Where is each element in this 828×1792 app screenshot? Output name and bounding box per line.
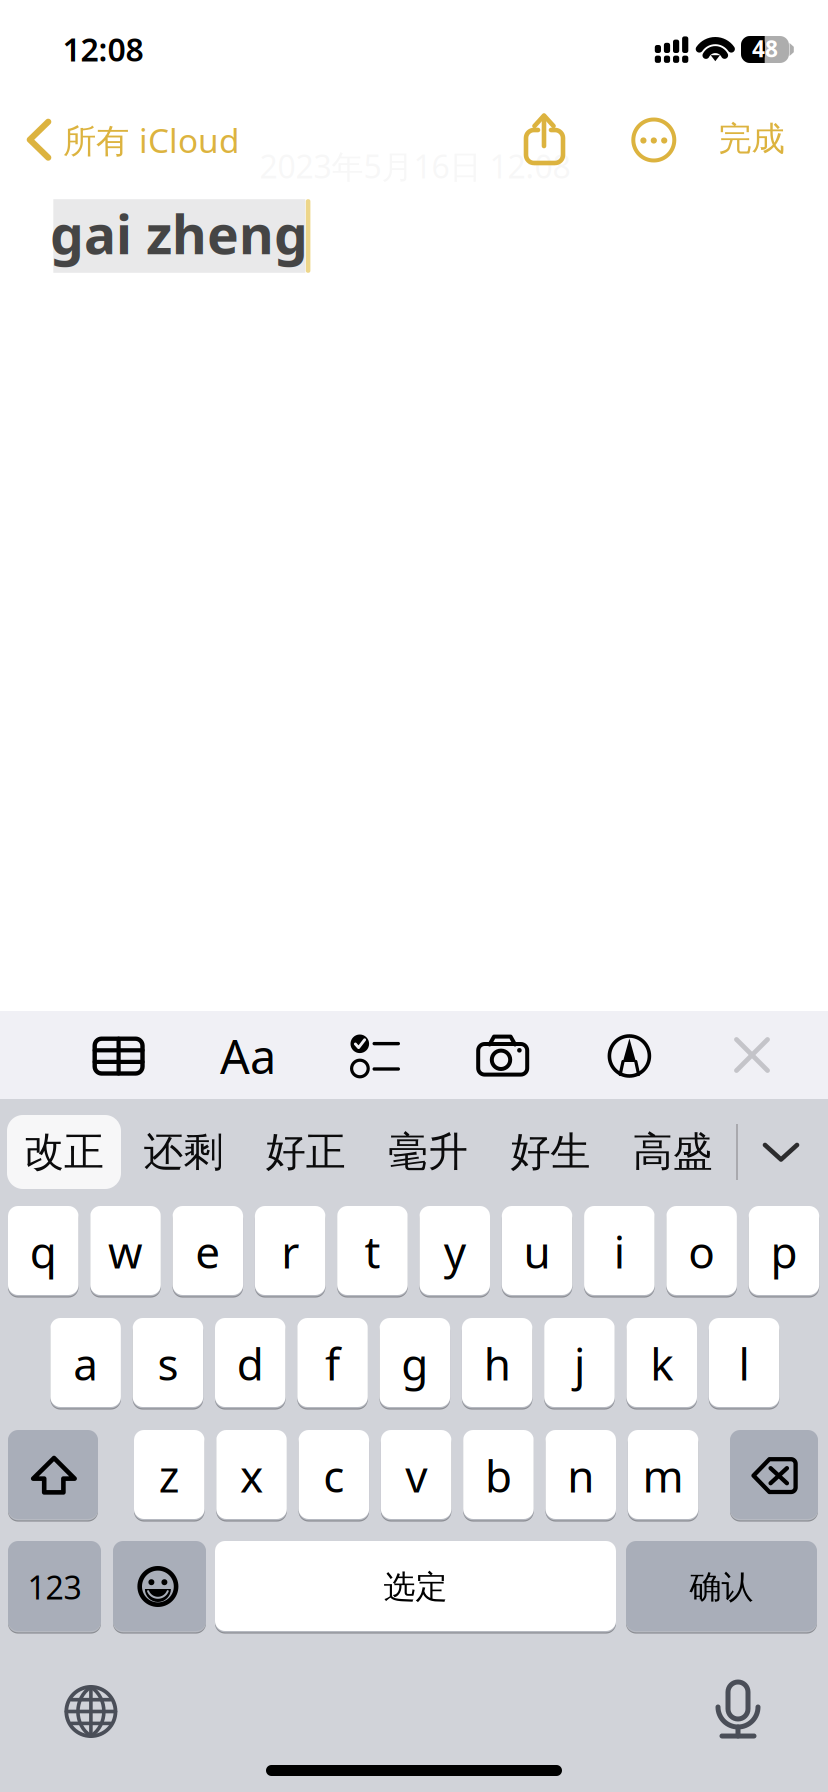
button[interactable]: q — [0, 0, 828, 1792]
staticText: f — [325, 1334, 340, 1393]
button[interactable]: w — [0, 0, 828, 1792]
button[interactable]: j — [0, 0, 828, 1792]
staticText: a — [73, 1334, 98, 1393]
staticText: d — [237, 1334, 264, 1393]
staticText: 123 — [27, 1566, 81, 1608]
staticText: 选定 — [383, 1567, 447, 1607]
button[interactable]: 完成 — [0, 0, 828, 1792]
staticText: 48 — [752, 33, 778, 63]
button[interactable]: a — [0, 0, 828, 1792]
staticText: y — [444, 1222, 466, 1281]
button[interactable]: Checklist — [0, 0, 828, 1792]
staticText: s — [157, 1334, 178, 1393]
staticText: t — [364, 1222, 380, 1281]
staticText: 确认 — [689, 1567, 753, 1607]
staticText: j — [574, 1334, 585, 1393]
button[interactable]: Table — [0, 0, 828, 1792]
staticText: 改正 — [24, 1127, 104, 1176]
staticText: gai zheng — [50, 198, 308, 269]
button[interactable]: h — [0, 0, 828, 1792]
button[interactable]: k — [0, 0, 828, 1792]
staticText: i — [614, 1222, 625, 1281]
button[interactable]: More options — [0, 0, 828, 1792]
button[interactable]: Switch keyboard — [0, 0, 828, 1792]
button[interactable]: p — [0, 0, 828, 1792]
staticText: Aa — [220, 1025, 276, 1087]
staticText: 毫升 — [388, 1127, 468, 1176]
staticText: p — [770, 1222, 797, 1281]
staticText: r — [281, 1222, 299, 1281]
button[interactable]: v — [0, 0, 828, 1792]
button[interactable]: 选定 — [0, 0, 828, 1792]
staticText: 2023年5月16日 12:08 — [259, 145, 570, 187]
staticText: 完成 — [718, 118, 784, 159]
button[interactable]: c — [0, 0, 828, 1792]
button[interactable]: l — [0, 0, 828, 1792]
button[interactable]: t — [0, 0, 828, 1792]
button[interactable]: y — [0, 0, 828, 1792]
button[interactable]: 毫升 — [0, 0, 828, 1792]
button[interactable]: x — [0, 0, 828, 1792]
button[interactable]: s — [0, 0, 828, 1792]
button[interactable]: r — [0, 0, 828, 1792]
button[interactable]: Close toolbar — [0, 0, 828, 1792]
button[interactable]: 还剩 — [0, 0, 828, 1792]
button[interactable]: d — [0, 0, 828, 1792]
button[interactable]: 改正 — [0, 0, 828, 1792]
staticText: l — [738, 1334, 749, 1393]
button[interactable]: Camera — [0, 0, 828, 1792]
button[interactable]: g — [0, 0, 828, 1792]
button[interactable]: Shift — [0, 0, 828, 1792]
button[interactable]: u — [0, 0, 828, 1792]
staticText: v — [405, 1446, 427, 1505]
staticText: z — [159, 1446, 180, 1505]
button[interactable]: 123 — [0, 0, 828, 1792]
staticText: n — [567, 1446, 594, 1505]
staticText: q — [30, 1222, 57, 1281]
button[interactable]: n — [0, 0, 828, 1792]
button[interactable]: 所有 iCloud — [0, 0, 828, 1792]
staticText: w — [108, 1222, 143, 1281]
button[interactable]: 好正 — [0, 0, 828, 1792]
button[interactable]: m — [0, 0, 828, 1792]
staticText: u — [523, 1222, 550, 1281]
button[interactable]: e — [0, 0, 828, 1792]
button[interactable]: i — [0, 0, 828, 1792]
button[interactable]: b — [0, 0, 828, 1792]
button[interactable]: Delete — [0, 0, 828, 1792]
staticText: h — [484, 1334, 511, 1393]
staticText: m — [642, 1446, 683, 1505]
staticText: 还剩 — [143, 1127, 223, 1176]
button[interactable]: Emoji — [0, 0, 828, 1792]
button[interactable]: Dictation — [0, 0, 828, 1792]
button[interactable]: 确认 — [0, 0, 828, 1792]
staticText: e — [195, 1222, 220, 1281]
button[interactable]: 高盛 — [0, 0, 828, 1792]
staticText: 高盛 — [633, 1127, 713, 1176]
button[interactable]: o — [0, 0, 828, 1792]
staticText: 好生 — [510, 1127, 590, 1176]
staticText: 好正 — [266, 1127, 346, 1176]
button[interactable]: 好生 — [0, 0, 828, 1792]
staticText: c — [323, 1446, 344, 1505]
button[interactable]: Share — [0, 0, 828, 1792]
button[interactable]: Markup — [0, 0, 828, 1792]
button[interactable]: Hide candidates — [0, 0, 828, 1792]
button[interactable]: Format — [0, 0, 828, 1792]
staticText: g — [401, 1334, 428, 1393]
staticText: k — [650, 1334, 673, 1393]
staticText: b — [485, 1446, 512, 1505]
staticText: x — [240, 1446, 263, 1505]
staticText: 所有 iCloud — [63, 118, 240, 162]
staticText: 12:08 — [62, 28, 143, 70]
button[interactable]: f — [0, 0, 828, 1792]
button[interactable]: z — [0, 0, 828, 1792]
staticText: o — [688, 1222, 715, 1281]
